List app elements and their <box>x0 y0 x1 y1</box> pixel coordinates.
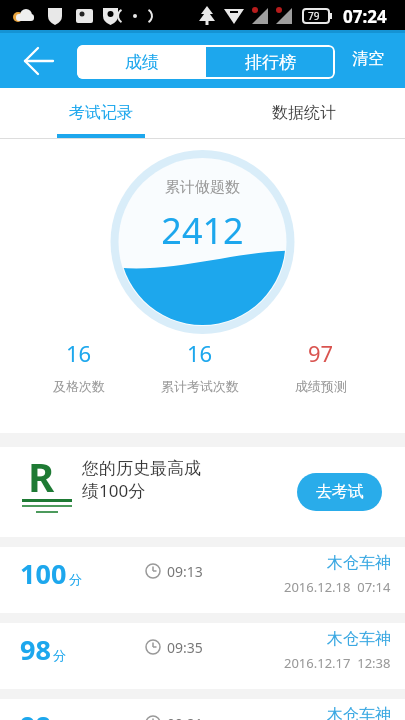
button[interactable]: 排行榜 <box>206 45 335 79</box>
staticText: 16 <box>66 338 92 368</box>
staticText: 去考试 <box>316 482 364 502</box>
staticText: 绩100分 <box>82 479 146 502</box>
staticText: 2412 <box>0 206 405 255</box>
staticText: 及格次数 <box>53 378 105 394</box>
staticText: 木仓车神 <box>327 629 391 649</box>
staticText: 数据统计 <box>272 103 336 123</box>
staticText: 98 <box>20 707 51 720</box>
staticText: 07:24 <box>343 5 387 28</box>
staticText: 成绩 <box>125 52 159 73</box>
staticText: 清空 <box>352 49 384 69</box>
staticText: 您的历史最高成 <box>82 458 201 479</box>
staticText: 97 <box>308 338 334 368</box>
staticText: 成绩预测 <box>295 378 347 394</box>
staticText: 分 <box>53 647 66 663</box>
staticText: 木仓车神 <box>327 553 391 573</box>
button[interactable]: 考试记录 <box>0 88 202 138</box>
button[interactable] <box>14 46 58 76</box>
button[interactable]: 清空 <box>338 44 398 74</box>
staticText: 09:35 <box>167 638 203 657</box>
button[interactable]: 98 <box>0 699 405 720</box>
button[interactable]: 98 <box>0 623 405 689</box>
staticText: 09:21 <box>167 714 203 720</box>
staticText: 2016.12.18 07:14 <box>284 578 391 596</box>
staticText: 累计考试次数 <box>161 378 239 394</box>
staticText: R <box>28 449 55 503</box>
staticText: 09:13 <box>167 562 203 581</box>
staticText: 98 <box>20 631 51 668</box>
button[interactable]: 成绩 <box>77 45 206 79</box>
staticText: 累计做题数 <box>0 178 405 197</box>
staticText: 考试记录 <box>69 103 133 123</box>
button[interactable]: 100 <box>0 547 405 613</box>
button[interactable]: 数据统计 <box>202 88 405 138</box>
staticText: 2016.12.17 12:38 <box>284 654 391 672</box>
staticText: 排行榜 <box>245 52 296 73</box>
staticText: 木仓车神 <box>327 705 391 720</box>
staticText: 100 <box>20 555 67 592</box>
staticText: 16 <box>187 338 213 368</box>
staticText: 79 <box>308 9 320 23</box>
button[interactable]: 去考试 <box>297 473 382 511</box>
staticText: 分 <box>69 571 82 587</box>
